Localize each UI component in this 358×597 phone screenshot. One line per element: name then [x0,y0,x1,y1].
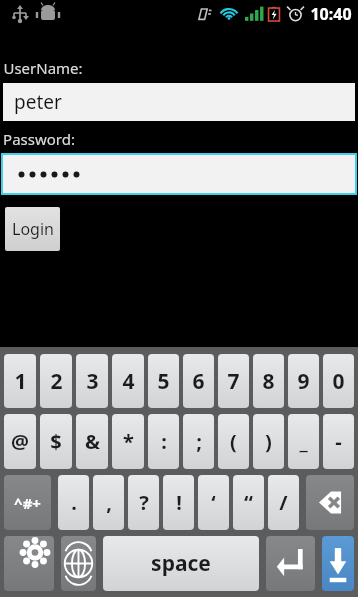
staticText: 3 [86,367,99,396]
staticText: space [151,549,211,578]
button[interactable]: $ [40,414,72,469]
staticText: _ [299,428,308,455]
button[interactable]: Switch to letters [4,536,54,591]
button[interactable]: . [58,475,89,530]
staticText: - [335,428,342,455]
staticText: UserName: [3,58,83,78]
button[interactable]: * [112,414,144,469]
button[interactable]: space [103,536,259,591]
staticText: 9 [297,367,310,396]
staticText: ) [265,428,272,455]
staticText: 10:40 [310,3,352,25]
staticText: / [279,489,288,516]
staticText: 8 [262,367,275,396]
button[interactable]: , [93,475,124,530]
staticText: Login [12,218,54,240]
button[interactable]: “ [233,475,264,530]
staticText: & [85,428,100,455]
button[interactable]: / [268,475,299,530]
button[interactable]: 6 [183,354,214,408]
button[interactable]: ^#+ [4,475,51,530]
button[interactable]: ) [253,414,284,469]
button[interactable]: 1 [4,354,36,408]
staticText: ? [139,489,149,516]
button[interactable]: 2 [40,354,72,408]
button[interactable]: Login [5,207,60,251]
staticText: Password: [3,129,75,149]
button[interactable]: : [148,414,179,469]
staticText: 6 [192,367,205,396]
button[interactable]: peter [3,83,355,121]
button[interactable]: & [76,414,108,469]
staticText: $ [50,428,62,455]
button[interactable]: ! [163,475,194,530]
button[interactable]: 0 [323,354,354,408]
staticText: 0 [332,367,345,396]
button[interactable] [3,155,355,193]
staticText: : [161,428,167,455]
staticText: . [71,489,77,516]
button[interactable]: ; [183,414,214,469]
button[interactable]: Hide keyboard [322,536,354,591]
button[interactable]: 8 [253,354,284,408]
button[interactable]: ‘ [198,475,229,530]
staticText: 5 [157,367,170,396]
button[interactable]: ( [218,414,249,469]
staticText: ‘ [211,489,216,516]
button[interactable]: ? [128,475,159,530]
staticText: * [123,428,134,455]
button[interactable]: _ [288,414,319,469]
button[interactable]: 9 [288,354,319,408]
staticText: “ [244,489,253,516]
staticText: @ [11,428,29,455]
staticText: 2 [50,367,63,396]
staticText: 7 [227,367,240,396]
button[interactable]: 3 [76,354,108,408]
button[interactable]: 7 [218,354,249,408]
button[interactable]: - [323,414,354,469]
staticText: , [106,489,112,516]
button[interactable]: Enter [266,536,315,591]
staticText: ! [176,489,182,516]
button[interactable]: 4 [112,354,144,408]
button[interactable]: 5 [148,354,179,408]
staticText: ( [230,428,237,455]
staticText: 1 [14,367,27,396]
staticText: peter [14,89,62,115]
button[interactable]: Delete [306,475,354,530]
staticText: ; [196,428,202,455]
staticText: 4 [122,367,135,396]
staticText: ^#+ [14,493,41,513]
button[interactable]: @ [4,414,36,469]
button[interactable]: Change language [61,536,96,591]
